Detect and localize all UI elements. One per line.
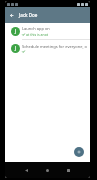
- button[interactable]: Recent apps: [64, 166, 73, 175]
- staticText: J: [15, 45, 17, 52]
- button[interactable]: Navigate up: [6, 10, 17, 21]
- button[interactable]: Add: [74, 147, 84, 157]
- staticText: J: [15, 28, 17, 35]
- staticText: Schedule meetings for everyone, o: [22, 44, 88, 49]
- button[interactable]: J: [5, 40, 90, 57]
- staticText: Jack Doe: [19, 12, 38, 18]
- button[interactable]: Home: [43, 166, 52, 175]
- button[interactable]: J: [5, 23, 90, 39]
- staticText: at this is anot: [26, 32, 49, 37]
- button[interactable]: Back: [22, 166, 31, 175]
- staticText: Launch app on: [22, 26, 50, 31]
